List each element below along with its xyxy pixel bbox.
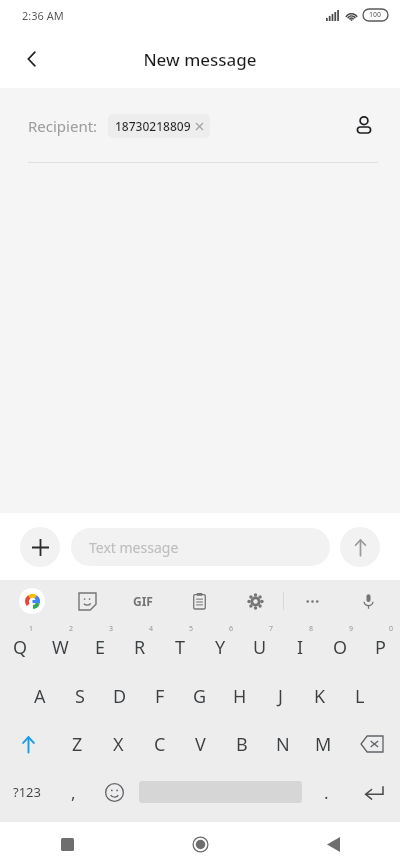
button[interactable]: Enter <box>347 768 400 816</box>
button[interactable]: D <box>100 672 140 720</box>
staticText: Q <box>13 635 28 660</box>
button[interactable]: Add attachment <box>20 527 60 567</box>
button[interactable]: More <box>284 580 340 622</box>
staticText: 100 <box>369 10 382 20</box>
button[interactable]: A <box>20 672 60 720</box>
button[interactable]: , <box>53 768 94 816</box>
button[interactable]: . <box>306 768 347 816</box>
staticText: GIF <box>133 593 153 609</box>
button[interactable]: C <box>139 720 180 768</box>
staticText: , <box>71 781 76 804</box>
button[interactable]: Stickers <box>59 580 115 622</box>
button[interactable]: Clipboard <box>171 580 227 622</box>
staticText: 7 <box>269 624 274 634</box>
staticText: L <box>355 684 365 709</box>
button[interactable]: Send <box>340 527 380 567</box>
button[interactable]: R <box>120 622 160 672</box>
staticText: V <box>195 732 206 757</box>
button[interactable]: F <box>140 672 180 720</box>
staticText: T <box>175 635 186 660</box>
staticText: G <box>193 684 207 709</box>
button[interactable]: Emoji <box>94 768 135 816</box>
staticText: 6 <box>229 624 234 634</box>
staticText: I <box>297 635 304 660</box>
staticText: 9 <box>349 624 354 634</box>
staticText: H <box>233 684 247 709</box>
staticText: E <box>95 635 106 660</box>
staticText: W <box>52 635 69 660</box>
staticText: 2 <box>69 624 74 634</box>
button[interactable]: Y <box>200 622 240 672</box>
staticText: U <box>253 635 267 660</box>
staticText: K <box>314 684 326 709</box>
button[interactable]: X <box>98 720 139 768</box>
button[interactable]: K <box>300 672 340 720</box>
staticText: . <box>324 781 329 804</box>
button[interactable]: H <box>220 672 260 720</box>
button[interactable]: Z <box>57 720 98 768</box>
button[interactable]: M <box>303 720 344 768</box>
staticText: D <box>113 684 127 709</box>
staticText: J <box>278 684 283 709</box>
button[interactable]: Shift <box>0 720 57 768</box>
button[interactable]: Text message <box>71 528 330 566</box>
staticText: X <box>113 732 124 757</box>
staticText: 18730218809 <box>115 118 191 134</box>
button[interactable]: N <box>262 720 303 768</box>
staticText: Recipient: <box>28 116 98 136</box>
button[interactable]: Home <box>134 822 267 866</box>
button[interactable]: O <box>320 622 360 672</box>
staticText: O <box>333 635 348 660</box>
staticText: Y <box>215 635 226 660</box>
staticText: 0 <box>389 624 394 634</box>
button[interactable]: Q <box>0 622 40 672</box>
staticText: N <box>276 732 290 757</box>
button[interactable]: Google <box>4 580 59 622</box>
button[interactable]: B <box>221 720 262 768</box>
button[interactable]: U <box>240 622 280 672</box>
button[interactable]: Settings <box>227 580 283 622</box>
button[interactable]: GIF <box>115 580 171 622</box>
staticText: 4 <box>149 624 154 634</box>
button[interactable]: Recents <box>0 822 134 866</box>
button[interactable]: L <box>340 672 380 720</box>
staticText: 1 <box>29 624 34 634</box>
button[interactable]: Delete <box>344 720 400 768</box>
staticText: R <box>134 635 146 660</box>
staticText: F <box>155 684 165 709</box>
staticText: ?123 <box>13 783 41 801</box>
staticText: S <box>75 684 85 709</box>
staticText: A <box>34 684 46 709</box>
staticText: 8 <box>309 624 314 634</box>
button[interactable]: 18730218809 <box>108 114 210 138</box>
staticText: 3 <box>109 624 114 634</box>
button[interactable]: I <box>280 622 320 672</box>
button[interactable]: ?123 <box>0 768 53 816</box>
button[interactable]: Choose contact <box>344 106 384 146</box>
staticText: P <box>375 635 386 660</box>
button[interactable]: Back <box>10 37 54 81</box>
button[interactable]: T <box>160 622 200 672</box>
button[interactable]: Voice input <box>340 580 396 622</box>
staticText: 2:36 AM <box>22 8 64 23</box>
staticText: Text message <box>89 538 179 557</box>
staticText: B <box>236 732 248 757</box>
button[interactable]: Back <box>267 822 400 866</box>
button[interactable]: W <box>40 622 80 672</box>
staticText: M <box>315 732 332 757</box>
button[interactable]: G <box>180 672 220 720</box>
button[interactable]: P <box>360 622 400 672</box>
button[interactable]: E <box>80 622 120 672</box>
button[interactable]: J <box>260 672 300 720</box>
staticText: C <box>154 732 166 757</box>
staticText: Z <box>72 732 83 757</box>
button[interactable]: V <box>180 720 221 768</box>
button[interactable]: S <box>60 672 100 720</box>
staticText: New message <box>143 48 257 71</box>
staticText: 5 <box>189 624 194 634</box>
